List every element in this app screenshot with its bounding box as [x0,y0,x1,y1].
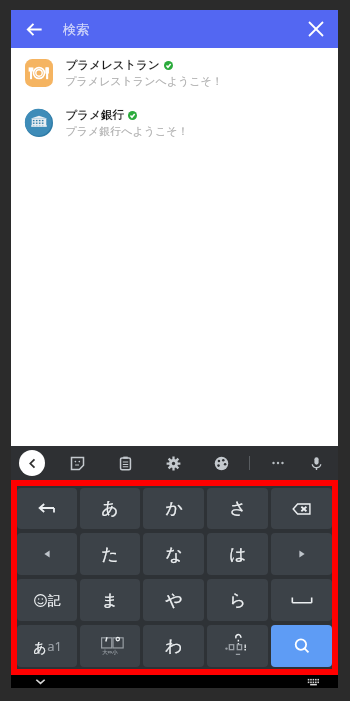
button[interactable]: Backspace [271,488,332,529]
button[interactable]: Undo [17,488,77,529]
button[interactable]: Close [300,13,332,45]
staticText: あ [33,639,47,655]
button[interactable]: Input mode [17,625,77,667]
button[interactable]: ら [207,579,268,621]
button[interactable]: な [143,533,204,575]
button[interactable]: プラメ銀行 [11,98,338,148]
button[interactable]: た [80,533,140,575]
staticText: プラメレストラン [65,58,160,72]
staticText: わ [165,636,183,657]
staticText: ま [101,590,119,611]
button[interactable]: ま [80,579,140,621]
button[interactable]: Stickers [65,451,89,475]
staticText: プラメ銀行へようこそ！ [65,124,189,138]
button[interactable]: か [143,488,204,529]
button[interactable]: Punctuation [207,625,268,667]
button[interactable]: や [143,579,204,621]
button[interactable]: Space [271,579,332,621]
button[interactable]: Symbols [17,579,77,621]
staticText: あ [101,498,119,519]
button[interactable]: Back [17,12,51,46]
staticText: や [165,590,183,611]
staticText: 検索 [63,21,89,37]
button[interactable]: Left [17,533,77,575]
button[interactable]: プラメレストラン [11,48,338,98]
staticText: た [101,544,119,565]
button[interactable]: Themes [209,451,233,475]
staticText: プラメ銀行 [65,108,124,122]
button[interactable]: Settings [161,451,185,475]
staticText: プラメレストランへようこそ！ [65,74,223,88]
staticText: さ [229,498,247,519]
button[interactable]: Voice input [304,451,328,475]
button[interactable]: あ [80,488,140,529]
button[interactable]: Switch keyboard [302,675,324,688]
staticText: は [229,544,247,565]
staticText: か [165,498,183,519]
button[interactable]: は [207,533,268,575]
button[interactable]: さ [207,488,268,529]
staticText: ら [229,590,247,611]
button[interactable]: Search [271,625,332,667]
staticText: 大⇔小 [102,649,118,656]
button[interactable]: わ [143,625,204,667]
button[interactable]: Hide keyboard [29,675,51,688]
button[interactable]: Clipboard [113,451,137,475]
button[interactable]: Previous [19,450,45,476]
button[interactable]: Right [271,533,332,575]
staticText: な [165,544,183,565]
button[interactable]: Dakuten [80,625,140,667]
staticText: 記 [48,592,61,608]
button[interactable]: More options [266,451,290,475]
staticText: a1 [47,637,62,655]
